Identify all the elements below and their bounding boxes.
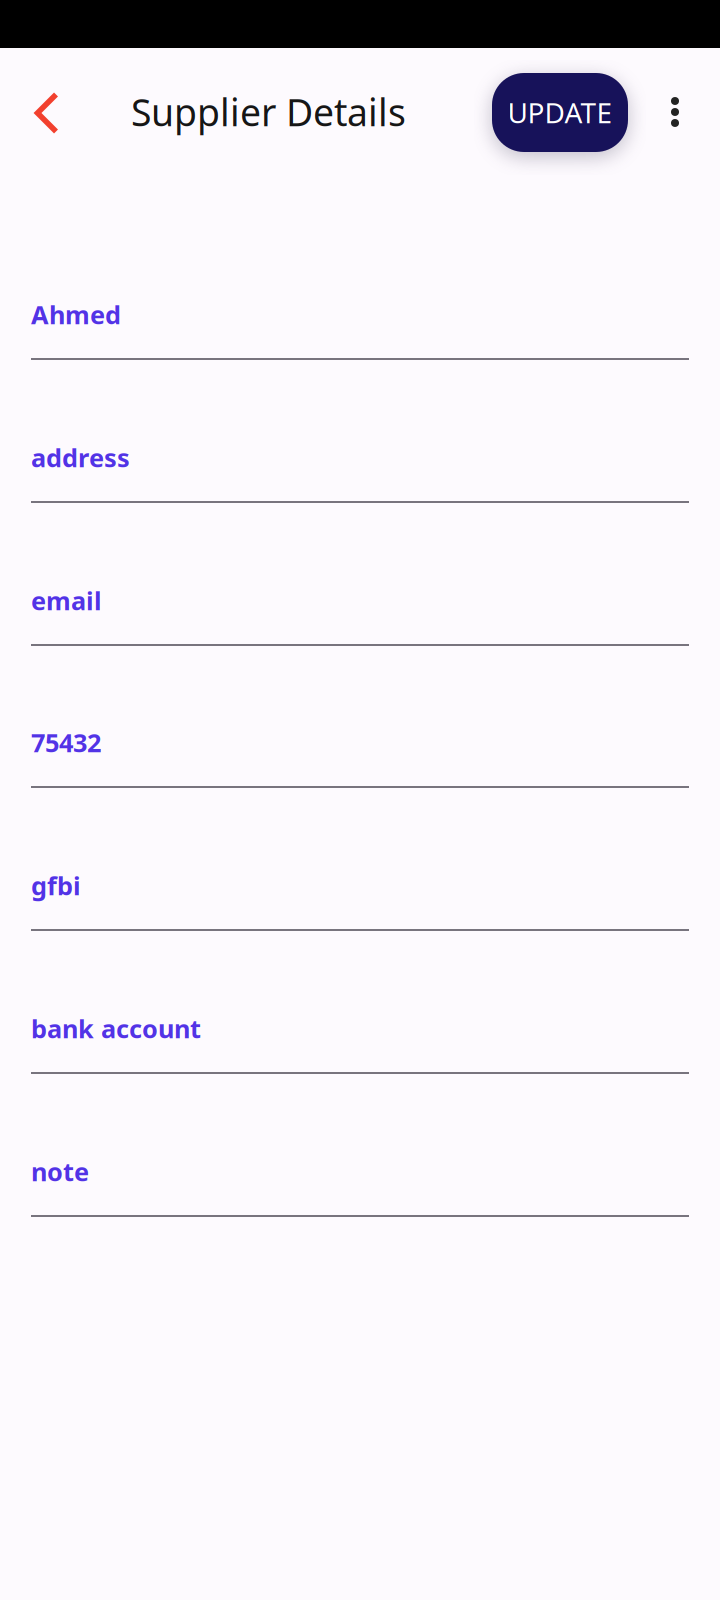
- staticText: address: [31, 441, 130, 474]
- staticText: Ahmed: [31, 298, 121, 331]
- button[interactable]: note: [31, 1156, 689, 1217]
- button[interactable]: address: [31, 442, 689, 503]
- staticText: email: [31, 584, 102, 617]
- button[interactable]: email: [31, 585, 689, 646]
- staticText: gfbi: [31, 869, 81, 902]
- button[interactable]: UPDATE: [492, 73, 628, 152]
- button[interactable]: More options: [643, 64, 707, 160]
- button[interactable]: Ahmed: [31, 299, 689, 360]
- staticText: 75432: [31, 726, 101, 759]
- button[interactable]: 75432: [31, 727, 689, 788]
- staticText: note: [31, 1155, 89, 1188]
- staticText: bank account: [31, 1012, 201, 1045]
- button[interactable]: Back: [7, 65, 87, 161]
- button[interactable]: gfbi: [31, 870, 689, 931]
- staticText: UPDATE: [507, 94, 612, 131]
- staticText: Supplier Details: [131, 87, 406, 137]
- button[interactable]: bank account: [31, 1013, 689, 1074]
